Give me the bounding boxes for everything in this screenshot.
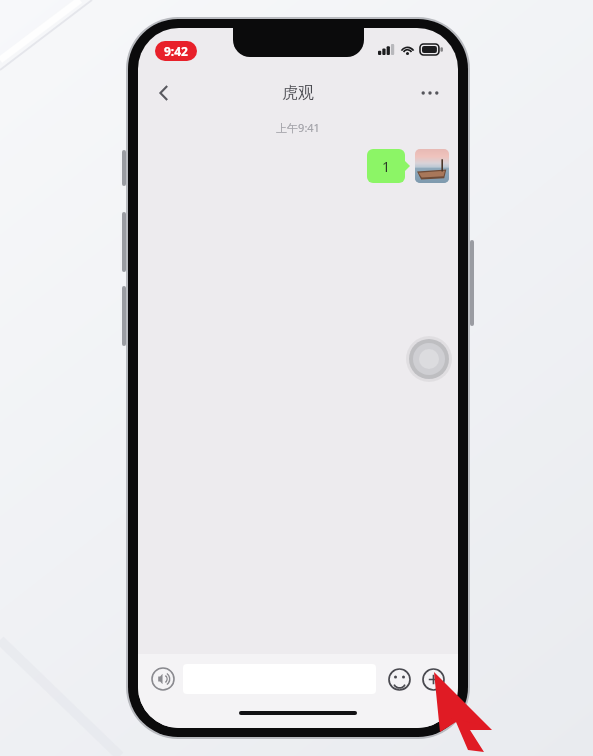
- button[interactable]: More actions: [416, 662, 450, 696]
- button[interactable]: Avatar: [415, 149, 449, 183]
- staticText: 上午9:41: [138, 120, 458, 135]
- button[interactable]: AssistiveTouch: [406, 336, 452, 382]
- button[interactable]: 1: [367, 149, 410, 183]
- button[interactable]: Emoji: [382, 662, 416, 696]
- button[interactable]: More options: [410, 73, 450, 113]
- button[interactable]: Back: [144, 73, 184, 113]
- button[interactable]: Voice message: [146, 662, 180, 696]
- staticText: 9:42: [164, 43, 188, 59]
- staticText: 虎观: [282, 83, 314, 103]
- staticText: 1: [382, 157, 391, 176]
